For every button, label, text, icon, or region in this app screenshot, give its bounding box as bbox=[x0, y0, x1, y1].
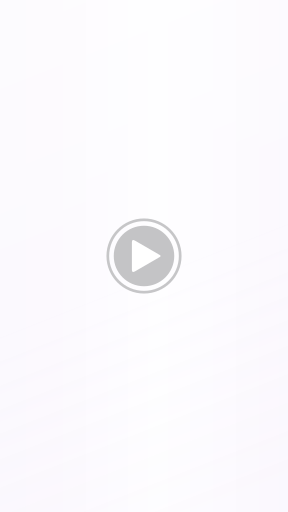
button[interactable]: Play bbox=[102, 214, 186, 298]
